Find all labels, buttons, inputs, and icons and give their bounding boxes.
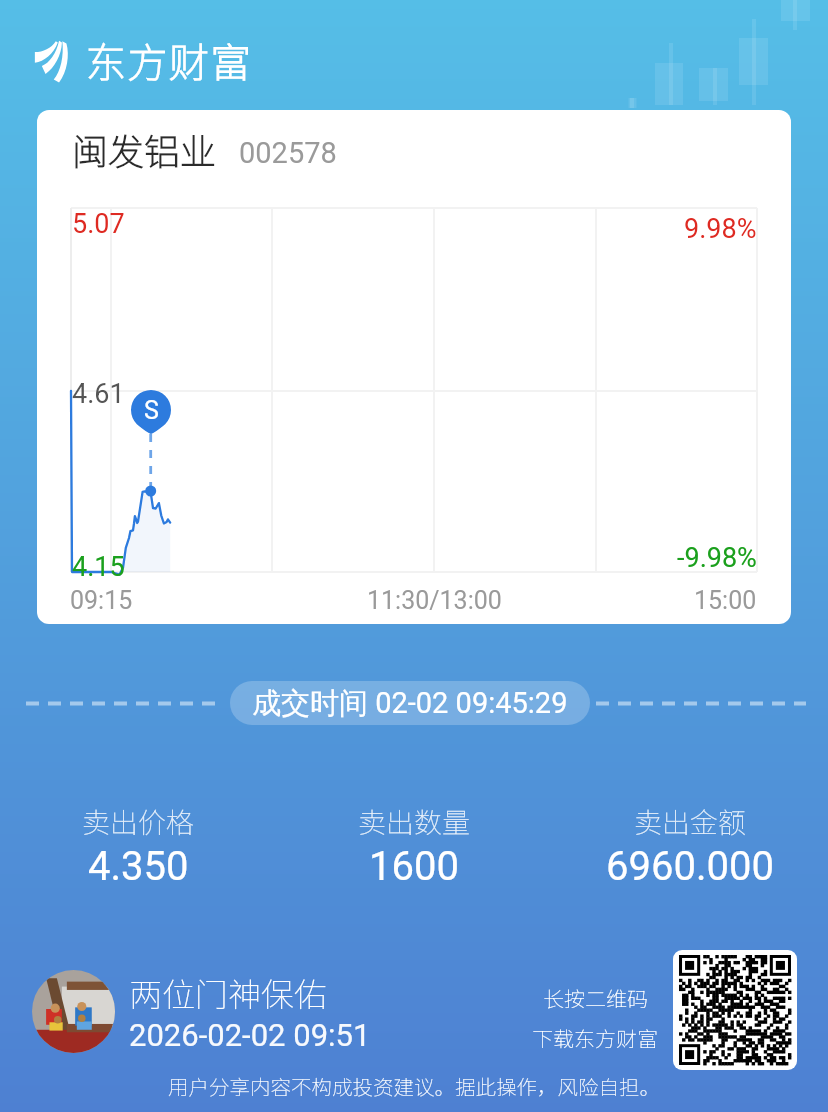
staticText: 用户分享内容不构成投资建议。据此操作，风险自担。 [0, 1071, 828, 1101]
staticText: 闽发铝业 [72, 123, 217, 175]
staticText: 002578 [239, 136, 337, 170]
staticText: 5.07 [72, 208, 125, 240]
button[interactable]: 卖出数量 [276, 801, 552, 890]
staticText: 15:00 [694, 586, 757, 615]
staticText: 成交时间 02-02 09:45:29 [252, 685, 568, 722]
staticText: 长按二维码 [543, 983, 648, 1013]
staticText: 卖出金额 [634, 801, 747, 842]
staticText: 09:15 [70, 586, 133, 615]
staticText: 6960.000 [606, 843, 774, 890]
staticText: 9.98% [684, 213, 757, 245]
staticText: 4.15 [72, 551, 125, 583]
staticText: 11:30/13:00 [367, 586, 502, 615]
button[interactable]: 闽发铝业 [37, 110, 791, 624]
button[interactable]: 东方财富 [32, 31, 252, 89]
button[interactable]: 卖出金额 [552, 801, 828, 890]
staticText: 东方财富 [86, 31, 252, 89]
staticText: 4.61 [72, 378, 125, 410]
staticText: 两位门神保佑 [129, 969, 327, 1017]
staticText: 4.350 [88, 843, 189, 890]
staticText: -9.98% [677, 542, 757, 574]
staticText: 2026-02-02 09:51 [129, 1017, 371, 1053]
staticText: 卖出价格 [82, 801, 195, 842]
button[interactable]: 长按二维码 [505, 983, 685, 1053]
button[interactable]: 二维码 下载东方财富 [673, 950, 797, 1070]
staticText: 下载东方财富 [532, 1023, 658, 1053]
button[interactable]: 成交时间 02-02 09:45:29 [230, 681, 590, 725]
staticText: 1600 [369, 843, 459, 890]
button[interactable]: 卖出价格 [0, 801, 276, 890]
staticText: S [144, 396, 159, 425]
staticText: 卖出数量 [358, 801, 471, 842]
button[interactable]: 两位门神保佑 [32, 969, 371, 1053]
